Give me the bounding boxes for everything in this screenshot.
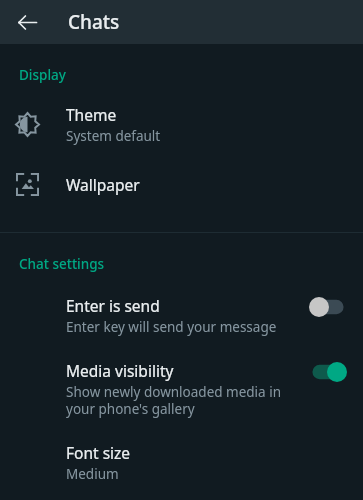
button[interactable]: Off [309,297,347,317]
button[interactable]: Back [9,4,45,40]
staticText: Enter key will send your message [66,318,277,336]
button[interactable]: Media visibility [0,348,363,430]
staticText: Chat settings [19,255,105,273]
staticText: Chats [68,9,120,35]
button[interactable]: On [309,362,347,382]
staticText: Display [19,66,66,84]
staticText: Show newly downloaded media in your phon… [66,383,281,418]
staticText: Medium [66,465,119,483]
button[interactable]: Wallpaper [0,159,363,210]
staticText: Media visibility [66,360,174,381]
button[interactable]: Font size [0,430,363,495]
button[interactable]: Theme [0,90,363,159]
staticText: Font size [66,442,131,463]
staticText: System default [66,127,161,145]
staticText: Theme [66,104,117,125]
staticText: Wallpaper [66,174,140,195]
button[interactable]: Enter is send [0,283,363,348]
staticText: Enter is send [66,295,160,316]
